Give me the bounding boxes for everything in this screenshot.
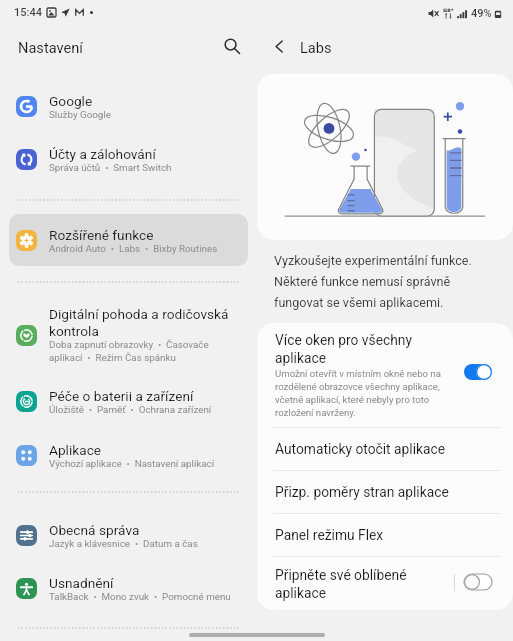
staticText: Usnadnění [49, 575, 114, 591]
staticText: Úložiště • Paměť • Ochrana zařízení [49, 404, 245, 415]
button[interactable]: Přizp. poměry stran aplikace [257, 470, 513, 513]
button[interactable]: Připněte své oblíbené aplikace [257, 556, 513, 610]
staticText: Jazyk a klávesnice • Datum a čas [49, 538, 245, 549]
button[interactable]: Aplikace [9, 432, 248, 478]
staticText: Správa účtů • Smart Switch [49, 162, 245, 173]
button[interactable]: Rozšířené funkce [9, 214, 248, 266]
button[interactable]: Back [265, 32, 293, 60]
staticText: Připněte své oblíbené aplikace [275, 567, 407, 602]
staticText: Panel režimu Flex [275, 527, 384, 543]
staticText: 49% [471, 7, 492, 20]
button[interactable]: Turn on [464, 574, 492, 590]
staticText: Doba zapnutí obrazovky • Časovače aplika… [49, 339, 217, 364]
button[interactable]: Péče o baterii a zařízení [9, 378, 248, 424]
button[interactable]: Automaticky otočit aplikace [257, 427, 513, 470]
staticText: Umožní otevřít v místním okně nebo na ro… [275, 368, 453, 419]
staticText: 15:44 [14, 6, 42, 19]
staticText: Vyzkoušejte experimentální funkce. Někte… [274, 253, 472, 310]
staticText: Digitální pohoda a rodičovská kontrola [49, 306, 245, 339]
staticText: Labs [300, 39, 332, 56]
staticText: Služby Google [49, 109, 245, 120]
staticText: TalkBack • Mono zvuk • Pomocné menu [49, 591, 245, 602]
staticText: Přizp. poměry stran aplikace [275, 484, 449, 500]
staticText: Účty a zálohování [49, 146, 156, 162]
staticText: Výchozí aplikace • Nastavení aplikací [49, 458, 245, 469]
button[interactable]: Obecná správa [9, 512, 248, 558]
staticText: Google [49, 93, 93, 109]
button[interactable]: Turn off [464, 364, 492, 380]
staticText: Nastavení [18, 39, 83, 56]
staticText: Rozšířené funkce [49, 227, 154, 243]
staticText: Více oken pro všechny aplikace [275, 332, 425, 367]
staticText: Obecná správa [49, 522, 140, 538]
staticText: Automaticky otočit aplikace [275, 441, 446, 457]
button[interactable]: Search [218, 32, 246, 60]
button[interactable]: Více oken pro všechny aplikace [257, 323, 513, 427]
staticText: Péče o baterii a zařízení [49, 388, 194, 404]
button[interactable]: Panel režimu Flex [257, 513, 513, 556]
staticText: Aplikace [49, 442, 102, 458]
button[interactable]: Usnadnění [9, 565, 248, 611]
button[interactable]: Google [9, 83, 248, 129]
staticText: Android Auto • Labs • Bixby Routines [49, 243, 245, 254]
button[interactable]: Účty a zálohování [9, 136, 248, 182]
button[interactable]: Digitální pohoda a rodičovská kontrola [9, 300, 248, 370]
